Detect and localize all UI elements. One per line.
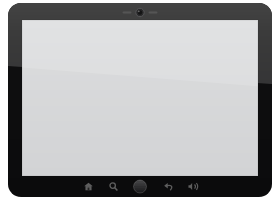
button[interactable]: Home button — [129, 178, 151, 194]
button[interactable]: Home — [80, 178, 96, 194]
button[interactable]: Back — [160, 178, 176, 194]
button[interactable]: Search — [105, 178, 121, 194]
button[interactable] — [22, 20, 258, 176]
button[interactable]: Tablet device — [8, 3, 272, 197]
button[interactable]: Volume — [184, 178, 200, 194]
